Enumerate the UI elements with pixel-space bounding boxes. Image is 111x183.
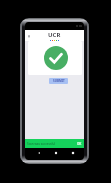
staticText: UCR <box>48 31 61 39</box>
button[interactable]: Recent apps <box>71 151 75 155</box>
button[interactable]: Scan was successful <box>27 139 82 148</box>
staticText: OK <box>77 142 82 146</box>
button[interactable]: Menu <box>27 34 31 38</box>
staticText: Scan was successful <box>27 142 56 146</box>
button[interactable]: Home <box>54 151 58 155</box>
button[interactable]: SUBMIT <box>49 78 68 84</box>
button[interactable]: Back <box>37 151 41 155</box>
staticText: SUBMIT <box>53 79 65 83</box>
